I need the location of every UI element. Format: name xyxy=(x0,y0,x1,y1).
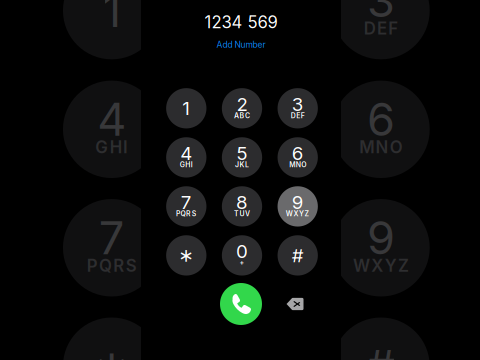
button[interactable]: 5 xyxy=(222,137,262,177)
button[interactable]: 4 xyxy=(166,137,206,177)
staticText: N xyxy=(296,161,301,169)
staticText: # xyxy=(366,339,395,360)
button[interactable]: 6 xyxy=(277,137,318,177)
staticText: D xyxy=(291,111,296,120)
staticText: K xyxy=(239,161,244,169)
staticText: G xyxy=(95,137,108,157)
staticText: 1 xyxy=(103,0,121,38)
staticText: 1234 569 xyxy=(204,12,277,32)
staticText: C xyxy=(245,111,250,120)
button[interactable]: Add Number xyxy=(201,38,281,51)
staticText: 6 xyxy=(367,92,395,147)
staticText: Z xyxy=(304,210,309,218)
staticText: E xyxy=(377,18,387,39)
staticText: + xyxy=(239,259,244,267)
staticText: # xyxy=(292,244,304,267)
staticText: X xyxy=(371,255,383,276)
button[interactable]: 7 xyxy=(166,186,206,226)
staticText: 6 xyxy=(292,142,304,165)
staticText: S xyxy=(126,255,137,276)
button[interactable]: 3 xyxy=(277,88,318,128)
button[interactable]: # xyxy=(277,235,318,275)
staticText: E xyxy=(296,111,300,120)
staticText: 9 xyxy=(292,191,304,214)
button[interactable]: ∗ xyxy=(166,235,206,275)
staticText: Z xyxy=(398,255,409,276)
button[interactable]: 1 xyxy=(166,88,206,128)
button[interactable]: 0 xyxy=(222,235,262,275)
staticText: 5 xyxy=(236,142,247,165)
staticText: V xyxy=(245,210,250,218)
staticText: O xyxy=(390,137,403,157)
staticText: H xyxy=(185,161,190,169)
button[interactable]: 9 xyxy=(277,186,318,226)
staticText: A xyxy=(234,111,239,120)
staticText: M xyxy=(289,161,295,169)
staticText: 3 xyxy=(367,0,395,28)
staticText: 2 xyxy=(236,93,247,115)
staticText: W xyxy=(353,255,370,276)
button[interactable]: Call xyxy=(220,283,262,325)
staticText: 4 xyxy=(97,92,126,147)
staticText: L xyxy=(245,161,249,169)
staticText: T xyxy=(234,210,239,218)
staticText: 1 xyxy=(182,97,190,120)
staticText: ∗ xyxy=(93,340,131,360)
staticText: M xyxy=(359,137,374,157)
staticText: 4 xyxy=(180,142,192,165)
staticText: H xyxy=(110,137,122,157)
staticText: 7 xyxy=(181,191,192,214)
staticText: U xyxy=(239,210,244,218)
staticText: I xyxy=(123,137,128,157)
button[interactable]: 2 xyxy=(222,88,262,128)
staticText: O xyxy=(301,161,306,169)
button[interactable]: Delete xyxy=(278,287,312,321)
staticText: Y xyxy=(385,255,397,276)
staticText: P xyxy=(176,210,180,218)
staticText: Q xyxy=(99,255,112,276)
staticText: 9 xyxy=(367,211,395,265)
staticText: R xyxy=(113,255,124,276)
staticText: R xyxy=(186,210,191,218)
staticText: X xyxy=(293,210,298,218)
staticText: 8 xyxy=(236,191,248,214)
staticText: 7 xyxy=(99,211,125,265)
staticText: Q xyxy=(180,210,185,218)
staticText: ∗ xyxy=(178,244,194,266)
staticText: S xyxy=(192,210,197,218)
staticText: J xyxy=(235,161,239,169)
staticText: B xyxy=(239,111,244,120)
staticText: D xyxy=(364,18,376,39)
staticText: P xyxy=(87,255,98,276)
staticText: I xyxy=(191,161,193,169)
button[interactable]: 8 xyxy=(222,186,262,226)
staticText: G xyxy=(180,161,185,169)
staticText: W xyxy=(286,210,293,218)
staticText: Add Number xyxy=(216,39,265,50)
staticText: N xyxy=(375,137,388,157)
staticText: F xyxy=(388,18,398,39)
staticText: F xyxy=(301,111,305,120)
staticText: 3 xyxy=(292,93,304,115)
staticText: Y xyxy=(299,210,304,218)
staticText: 0 xyxy=(236,240,248,263)
